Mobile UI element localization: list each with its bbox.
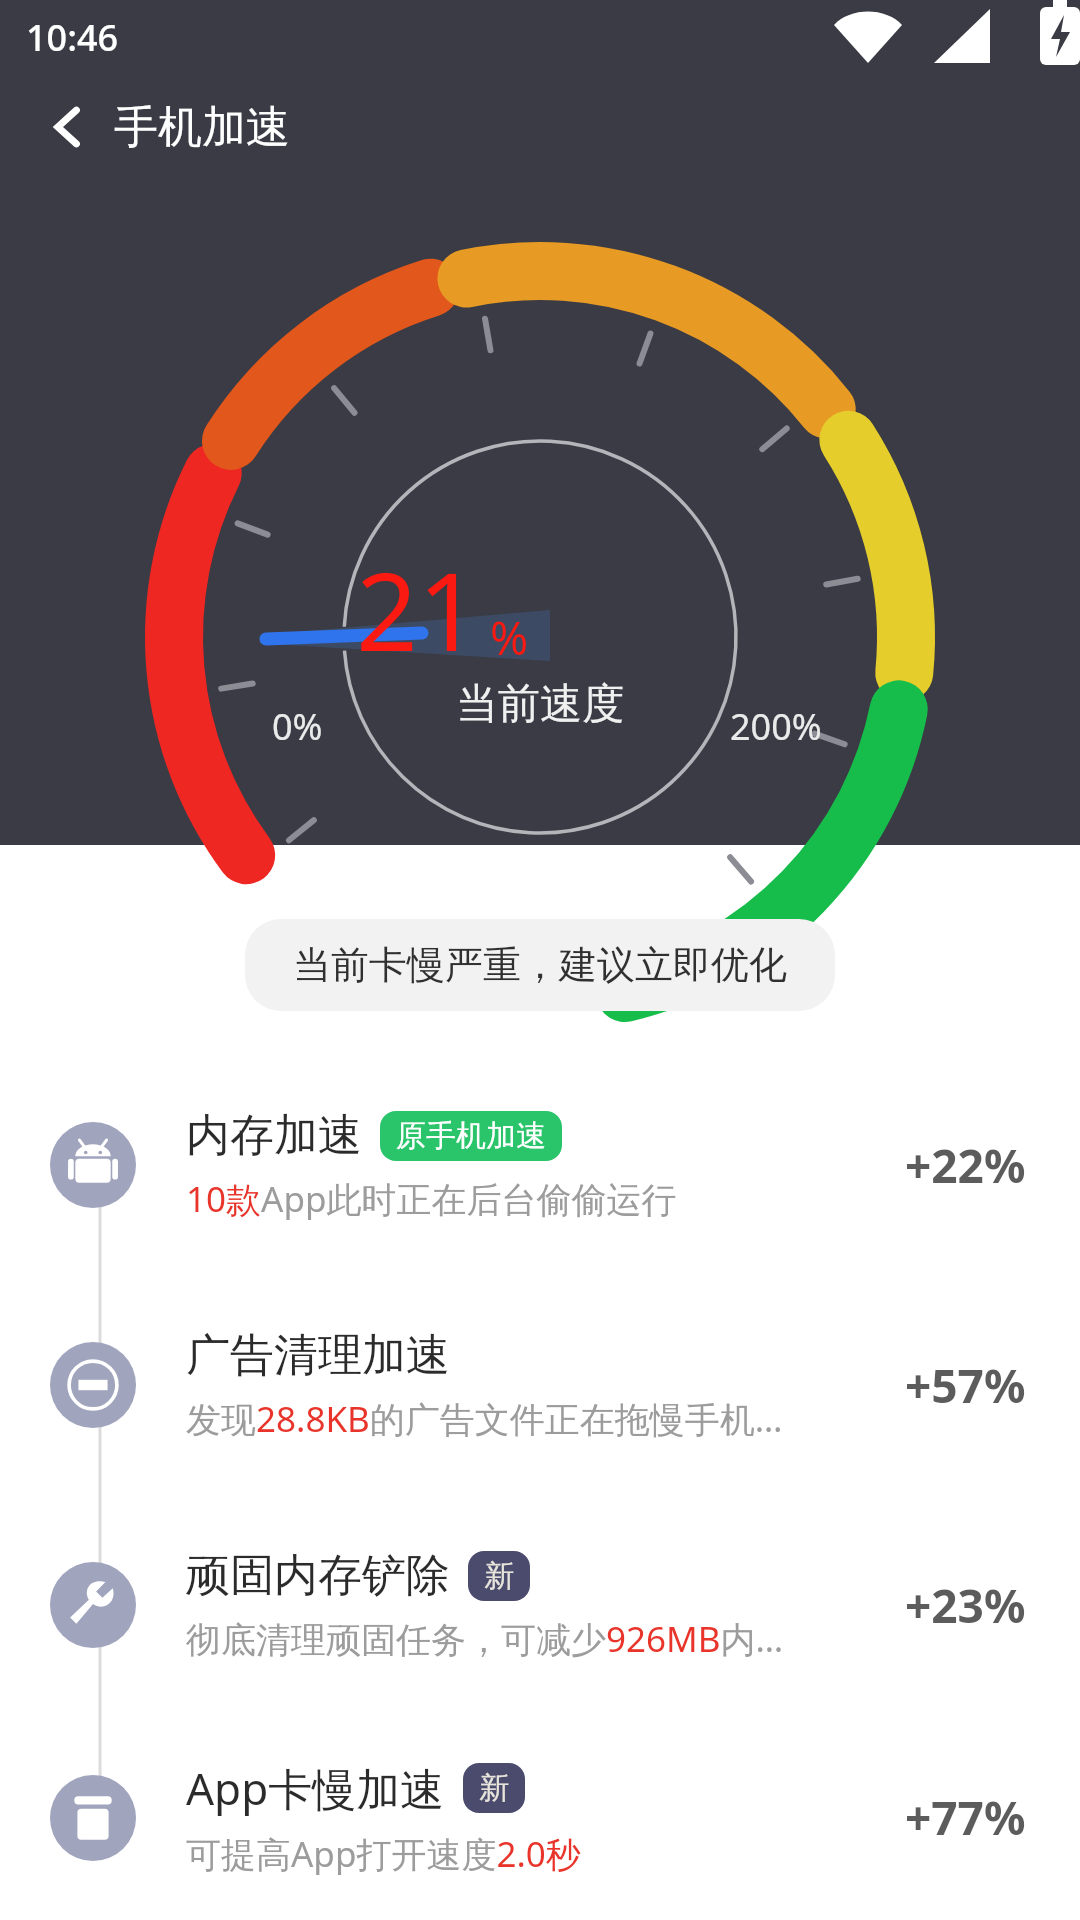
- button[interactable]: 广告清理加速: [0, 1275, 1080, 1495]
- staticText: 0%: [272, 702, 323, 751]
- button[interactable]: 内存加速: [0, 1055, 1080, 1275]
- staticText: 新: [484, 1557, 514, 1595]
- staticText: 内存加速: [186, 1108, 362, 1163]
- staticText: +57%: [905, 1354, 1026, 1417]
- staticText: 原手机加速: [396, 1117, 546, 1155]
- staticText: 广告清理加速: [186, 1328, 450, 1383]
- staticText: +22%: [905, 1134, 1026, 1197]
- staticText: 10款App此时正在后台偷偷运行: [186, 1175, 677, 1223]
- staticText: 可提高App打开速度2.0秒: [186, 1830, 581, 1878]
- button[interactable]: App卡慢加速: [0, 1715, 1080, 1920]
- staticText: %: [490, 606, 529, 669]
- staticText: 发现28.8KB的广告文件正在拖慢手机…: [186, 1395, 783, 1443]
- staticText: 21: [356, 536, 480, 683]
- button[interactable]: 当前卡慢严重，建议立即优化: [245, 919, 835, 1011]
- staticText: 10:46: [26, 13, 119, 62]
- button[interactable]: Back: [32, 91, 104, 163]
- button[interactable]: 顽固内存铲除: [0, 1495, 1080, 1715]
- staticText: 顽固内存铲除: [186, 1548, 450, 1603]
- staticText: 当前速度: [456, 678, 624, 731]
- staticText: 200%: [730, 702, 822, 751]
- staticText: 手机加速: [114, 100, 290, 155]
- staticText: +77%: [905, 1786, 1026, 1849]
- staticText: +23%: [905, 1574, 1026, 1637]
- staticText: App卡慢加速: [186, 1758, 445, 1818]
- staticText: 新: [479, 1769, 509, 1807]
- staticText: 当前卡慢严重，建议立即优化: [293, 941, 787, 989]
- staticText: 彻底清理顽固任务，可减少926MB内…: [186, 1615, 784, 1663]
